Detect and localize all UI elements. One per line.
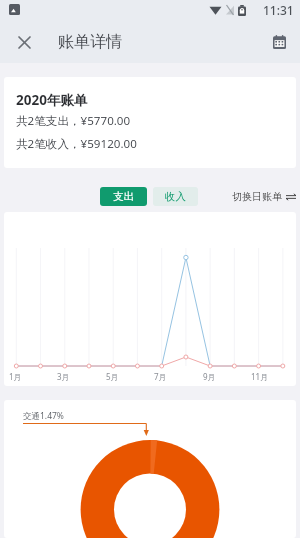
staticText: 11月 [251, 371, 269, 382]
button[interactable]: 支出 [100, 187, 147, 206]
button[interactable]: 收入 [153, 187, 198, 206]
button[interactable]: Calendar [266, 29, 292, 55]
staticText: 9月 [203, 371, 216, 382]
staticText: 账单详情 [58, 32, 122, 52]
staticText: 交通1.47% [23, 410, 64, 422]
staticText: 切换日账单 [232, 190, 282, 203]
staticText: 支出 [113, 190, 134, 203]
button[interactable]: Close [11, 29, 37, 55]
staticText: 5月 [106, 371, 119, 382]
staticText: 收入 [165, 190, 186, 203]
staticText: 共2笔收入，¥59120.00 [16, 136, 137, 152]
staticText: 2020年账单 [16, 91, 88, 109]
staticText: 7月 [154, 371, 167, 382]
staticText: 11:31 [263, 2, 294, 18]
staticText: 3月 [57, 371, 70, 382]
staticText: 共2笔支出，¥5770.00 [16, 113, 131, 129]
staticText: 1月 [9, 371, 22, 382]
button[interactable]: 切换日账单 [232, 190, 296, 203]
